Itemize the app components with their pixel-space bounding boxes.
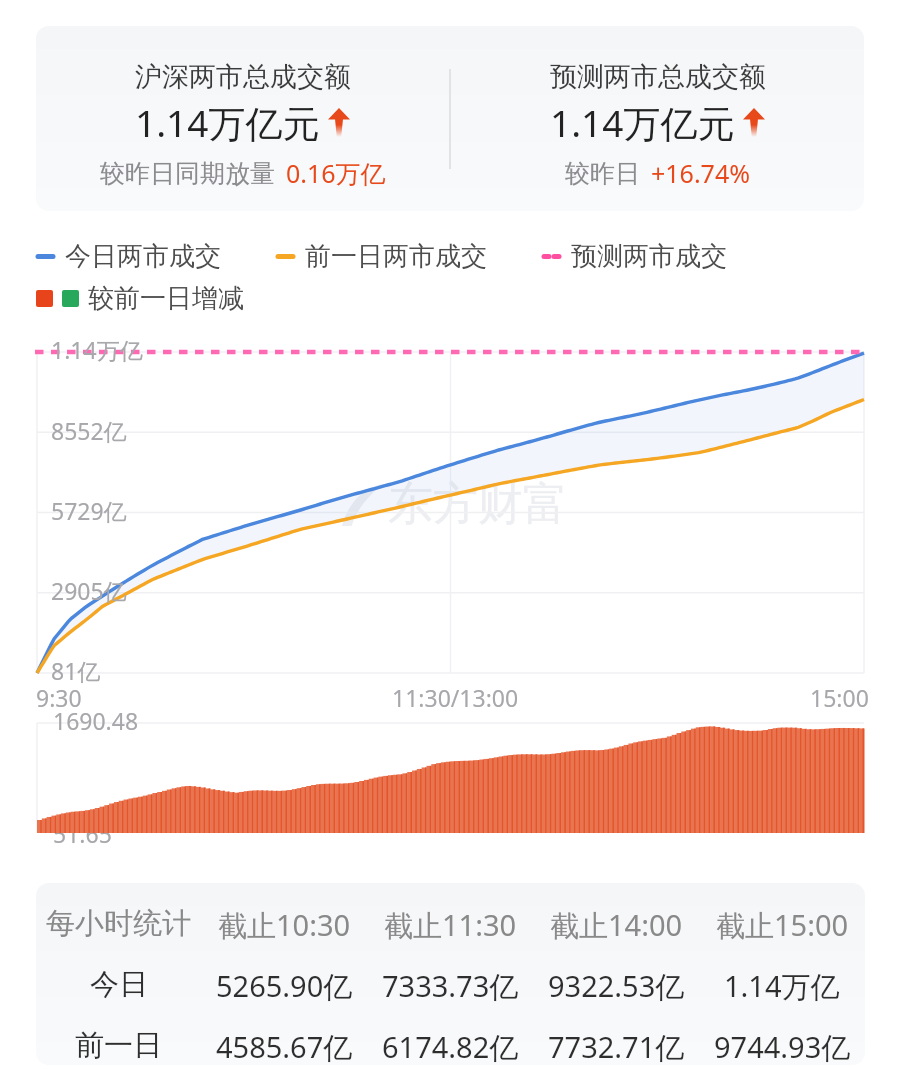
staticText: 截止14:00 — [550, 905, 683, 945]
staticText: 5265.90亿 — [216, 966, 353, 1006]
staticText: 较昨日 — [565, 158, 640, 189]
staticText: 截止15:00 — [716, 905, 849, 945]
staticText: 51.65 — [53, 818, 112, 849]
staticText: 8552亿 — [51, 415, 127, 446]
staticText: 5729亿 — [51, 495, 127, 526]
staticText: 2905亿 — [51, 575, 127, 606]
staticText: 9322.53亿 — [548, 966, 685, 1006]
staticText: 9744.93亿 — [714, 1027, 851, 1065]
staticText: 今日 — [90, 966, 148, 1003]
staticText: 15:00 — [810, 682, 869, 713]
staticText: 1690.48 — [53, 705, 139, 736]
staticText: 截止11:30 — [384, 905, 517, 945]
staticText: 0.16万亿 — [286, 156, 386, 190]
staticText: 1.14万亿 — [724, 966, 840, 1006]
staticText: 今日两市成交 — [65, 240, 221, 273]
staticText: 较前一日增减 — [88, 282, 244, 315]
staticText: 6174.82亿 — [382, 1027, 519, 1065]
staticText: 1.14万亿元 — [135, 97, 320, 148]
staticText: 1.14万亿 — [51, 334, 143, 365]
staticText: 每小时统计 — [46, 905, 191, 942]
staticText: +16.74% — [651, 156, 750, 190]
staticText: 前一日两市成交 — [305, 240, 487, 273]
staticText: 前一日 — [75, 1027, 162, 1064]
staticText: 预测两市总成交额 — [550, 60, 766, 94]
button[interactable]: 每小时统计 — [36, 883, 865, 1065]
staticText: 81亿 — [51, 655, 101, 686]
staticText: 4585.67亿 — [216, 1027, 353, 1065]
staticText: 沪深两市总成交额 — [135, 60, 351, 94]
staticText: 1.14万亿元 — [550, 97, 735, 148]
staticText: 7333.73亿 — [382, 966, 519, 1006]
staticText: 11:30/13:00 — [392, 682, 519, 713]
staticText: 较昨日同期放量 — [100, 158, 275, 189]
button[interactable]: 沪深两市总成交额 — [36, 26, 864, 211]
staticText: 预测两市成交 — [571, 240, 727, 273]
staticText: 截止10:30 — [218, 905, 351, 945]
staticText: 7732.71亿 — [548, 1027, 685, 1065]
staticText: 9:30 — [36, 682, 82, 713]
staticText: 东方财富 — [388, 476, 568, 533]
